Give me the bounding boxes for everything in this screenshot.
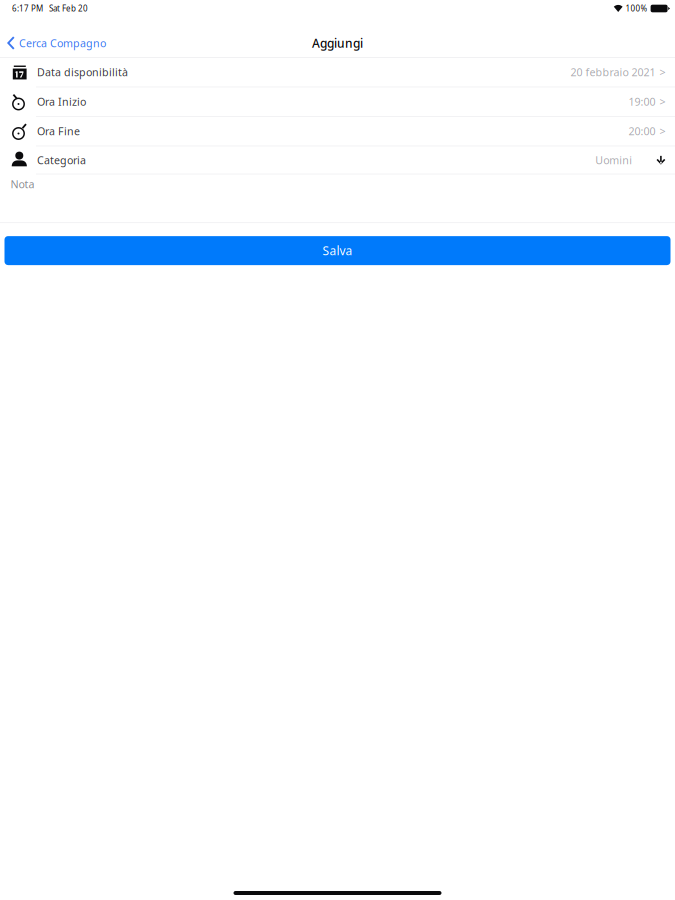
staticText: Categoria	[37, 153, 86, 167]
staticText: >	[659, 124, 665, 138]
button[interactable]: Ora Inizio	[0, 87, 675, 117]
staticText: >	[659, 95, 665, 109]
staticText: 20:00	[628, 124, 655, 138]
staticText: 19:00	[628, 95, 655, 109]
staticText: Salva	[322, 243, 352, 258]
button[interactable]: Cerca Compagno	[0, 23, 112, 51]
button[interactable]: Ora Fine	[0, 117, 675, 146]
button[interactable]: Data disponibilità	[0, 58, 675, 87]
staticText: Ora Inizio	[37, 95, 86, 109]
button[interactable]: Salva	[4, 236, 670, 265]
staticText: Sat Feb 20	[49, 3, 88, 14]
staticText: Nota	[10, 177, 34, 191]
staticText: Ora Fine	[37, 124, 80, 138]
staticText: 6:17 PM	[12, 3, 43, 14]
staticText: 100%	[626, 3, 648, 14]
button[interactable]: Categoria	[0, 146, 675, 174]
staticText: Aggiungi	[312, 35, 363, 51]
staticText: 20 febbraio 2021	[570, 65, 655, 79]
staticText: Data disponibilità	[37, 65, 128, 79]
staticText: >	[659, 65, 665, 79]
staticText: Uomini	[595, 153, 632, 167]
staticText: Cerca Compagno	[19, 36, 106, 50]
